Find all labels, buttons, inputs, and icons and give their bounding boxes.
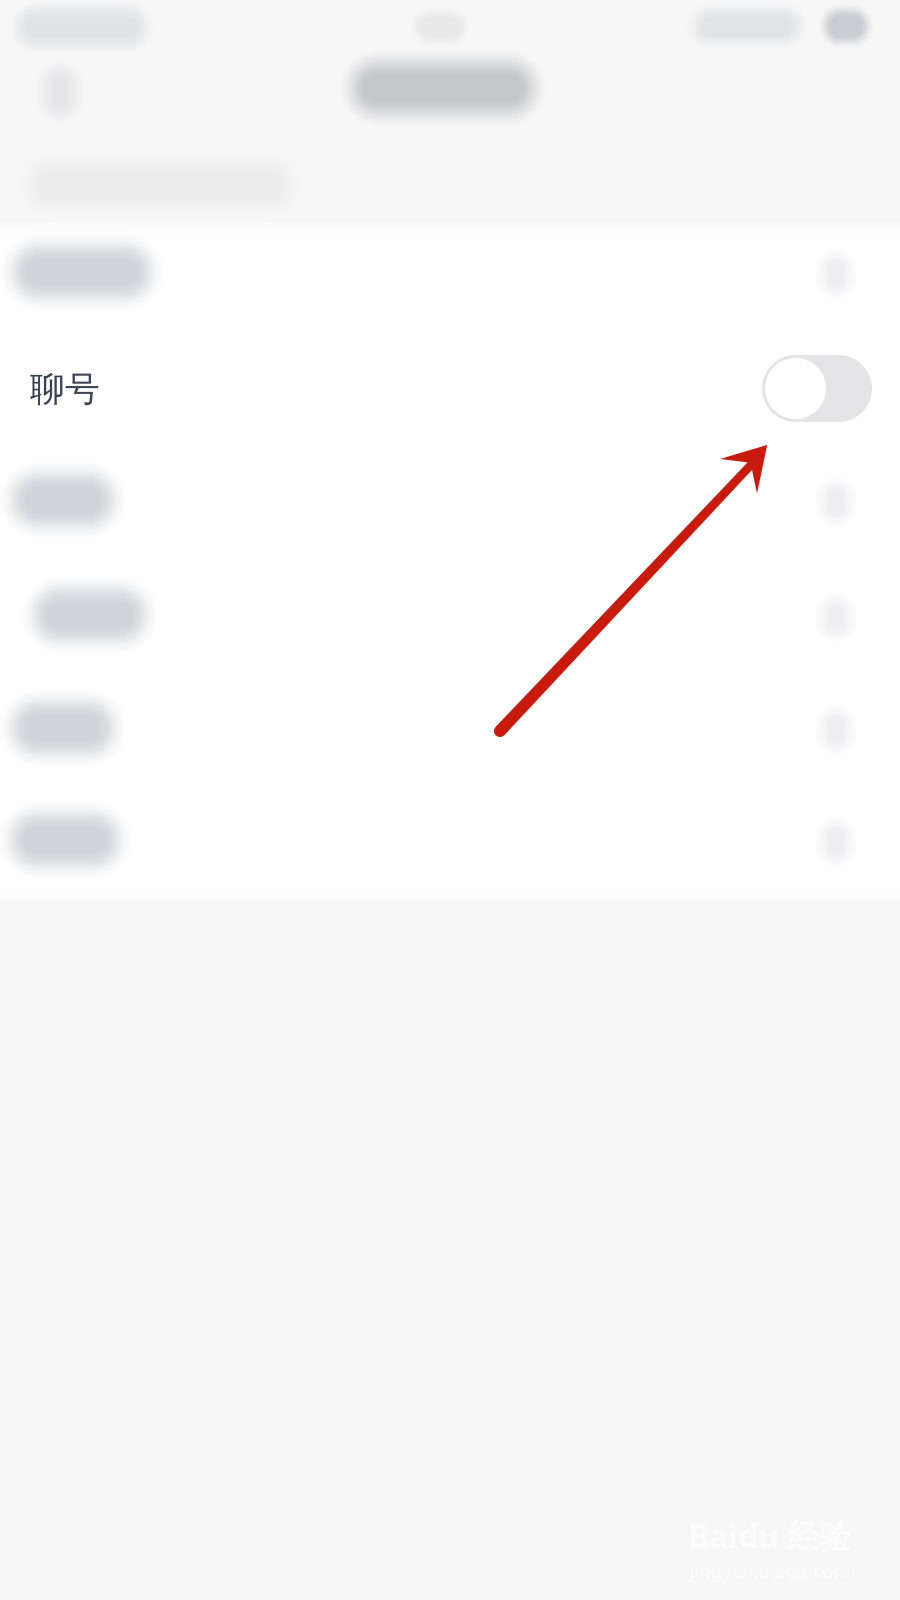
button[interactable]: 聊号 xyxy=(0,332,900,446)
staticText: 聊号 xyxy=(30,368,100,411)
